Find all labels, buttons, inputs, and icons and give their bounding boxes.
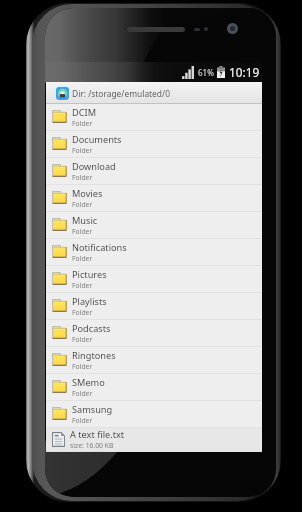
staticText: Folder [72, 200, 93, 209]
staticText: Dir: /storage/emulated/0 [72, 88, 170, 99]
button[interactable]: Documents [46, 131, 262, 158]
button[interactable]: Playlists [46, 293, 262, 320]
staticText: DCIM [72, 106, 96, 119]
staticText: Folder [72, 416, 93, 425]
button[interactable]: Notifications [46, 239, 262, 266]
staticText: Folder [72, 254, 93, 263]
staticText: Folder [72, 173, 93, 182]
staticText: Folder [72, 281, 93, 290]
button[interactable]: Movies [46, 185, 262, 212]
staticText: Download [72, 160, 116, 173]
staticText: Folder [72, 308, 93, 317]
staticText: Podcasts [72, 322, 111, 335]
button[interactable]: Podcasts [46, 320, 262, 347]
staticText: Folder [72, 389, 93, 398]
button[interactable]: A text file.txt [46, 428, 262, 452]
button[interactable]: SMemo [46, 374, 262, 401]
button[interactable]: Samsung [46, 401, 262, 428]
staticText: Music [72, 214, 98, 227]
staticText: Ringtones [72, 349, 116, 362]
staticText: A text file.txt [70, 428, 125, 441]
button[interactable]: Dir: /storage/emulated/0 [46, 82, 262, 104]
staticText: 61% [198, 67, 214, 78]
button[interactable]: Music [46, 212, 262, 239]
button[interactable]: Ringtones [46, 347, 262, 374]
staticText: Playlists [72, 295, 107, 308]
staticText: Notifications [72, 241, 127, 254]
staticText: Folder [72, 119, 93, 128]
staticText: Samsung [72, 403, 113, 416]
staticText: Movies [72, 187, 103, 200]
staticText: Pictures [72, 268, 107, 281]
staticText: 10:19 [229, 64, 260, 80]
button[interactable]: Download [46, 158, 262, 185]
staticText: Documents [72, 133, 122, 146]
staticText: Folder [72, 335, 93, 344]
button[interactable]: DCIM [46, 104, 262, 131]
staticText: Folder [72, 146, 93, 155]
staticText: size: 16.00 KB [70, 441, 114, 450]
staticText: SMemo [72, 376, 105, 389]
button[interactable]: Pictures [46, 266, 262, 293]
staticText: Folder [72, 227, 93, 236]
staticText: Folder [72, 362, 93, 371]
